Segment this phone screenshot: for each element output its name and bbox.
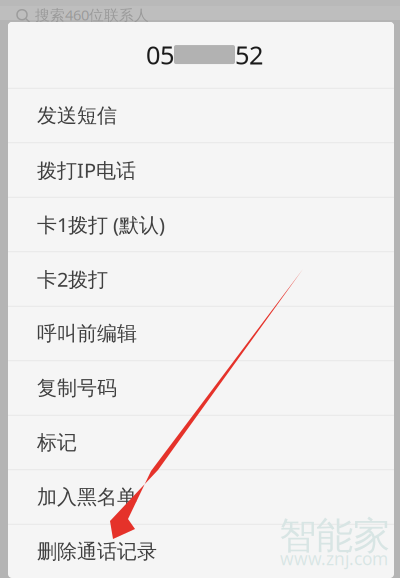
staticText: 发送短信 [37,103,117,128]
button[interactable]: 发送短信 [8,89,394,142]
staticText: 智能家 [279,513,390,559]
button[interactable]: 标记 [8,416,394,469]
staticText: 搜索460位联系人 [35,5,149,24]
staticText: 删除通话记录 [37,539,157,564]
staticText: 拨打IP电话 [37,157,136,183]
button[interactable]: 卡1拨打 (默认) [8,198,394,251]
staticText: 加入黑名单 [37,485,137,509]
button[interactable]: 删除通话记录 [8,525,394,578]
button[interactable]: 卡2拨打 [8,252,394,306]
button[interactable]: 复制号码 [8,361,394,415]
staticText: 卡2拨打 [37,266,108,292]
staticText: 复制号码 [37,376,117,400]
button[interactable]: 呼叫前编辑 [8,307,394,360]
staticText: 52 [235,38,263,71]
button[interactable]: 拨打IP电话 [8,143,394,197]
staticText: 卡1拨打 (默认) [37,211,165,238]
staticText: 标记 [37,430,77,455]
staticText: 05 [146,38,174,71]
staticText: 呼叫前编辑 [37,321,137,346]
button[interactable]: 加入黑名单 [8,470,394,524]
staticText: www.znj.com [280,547,388,570]
